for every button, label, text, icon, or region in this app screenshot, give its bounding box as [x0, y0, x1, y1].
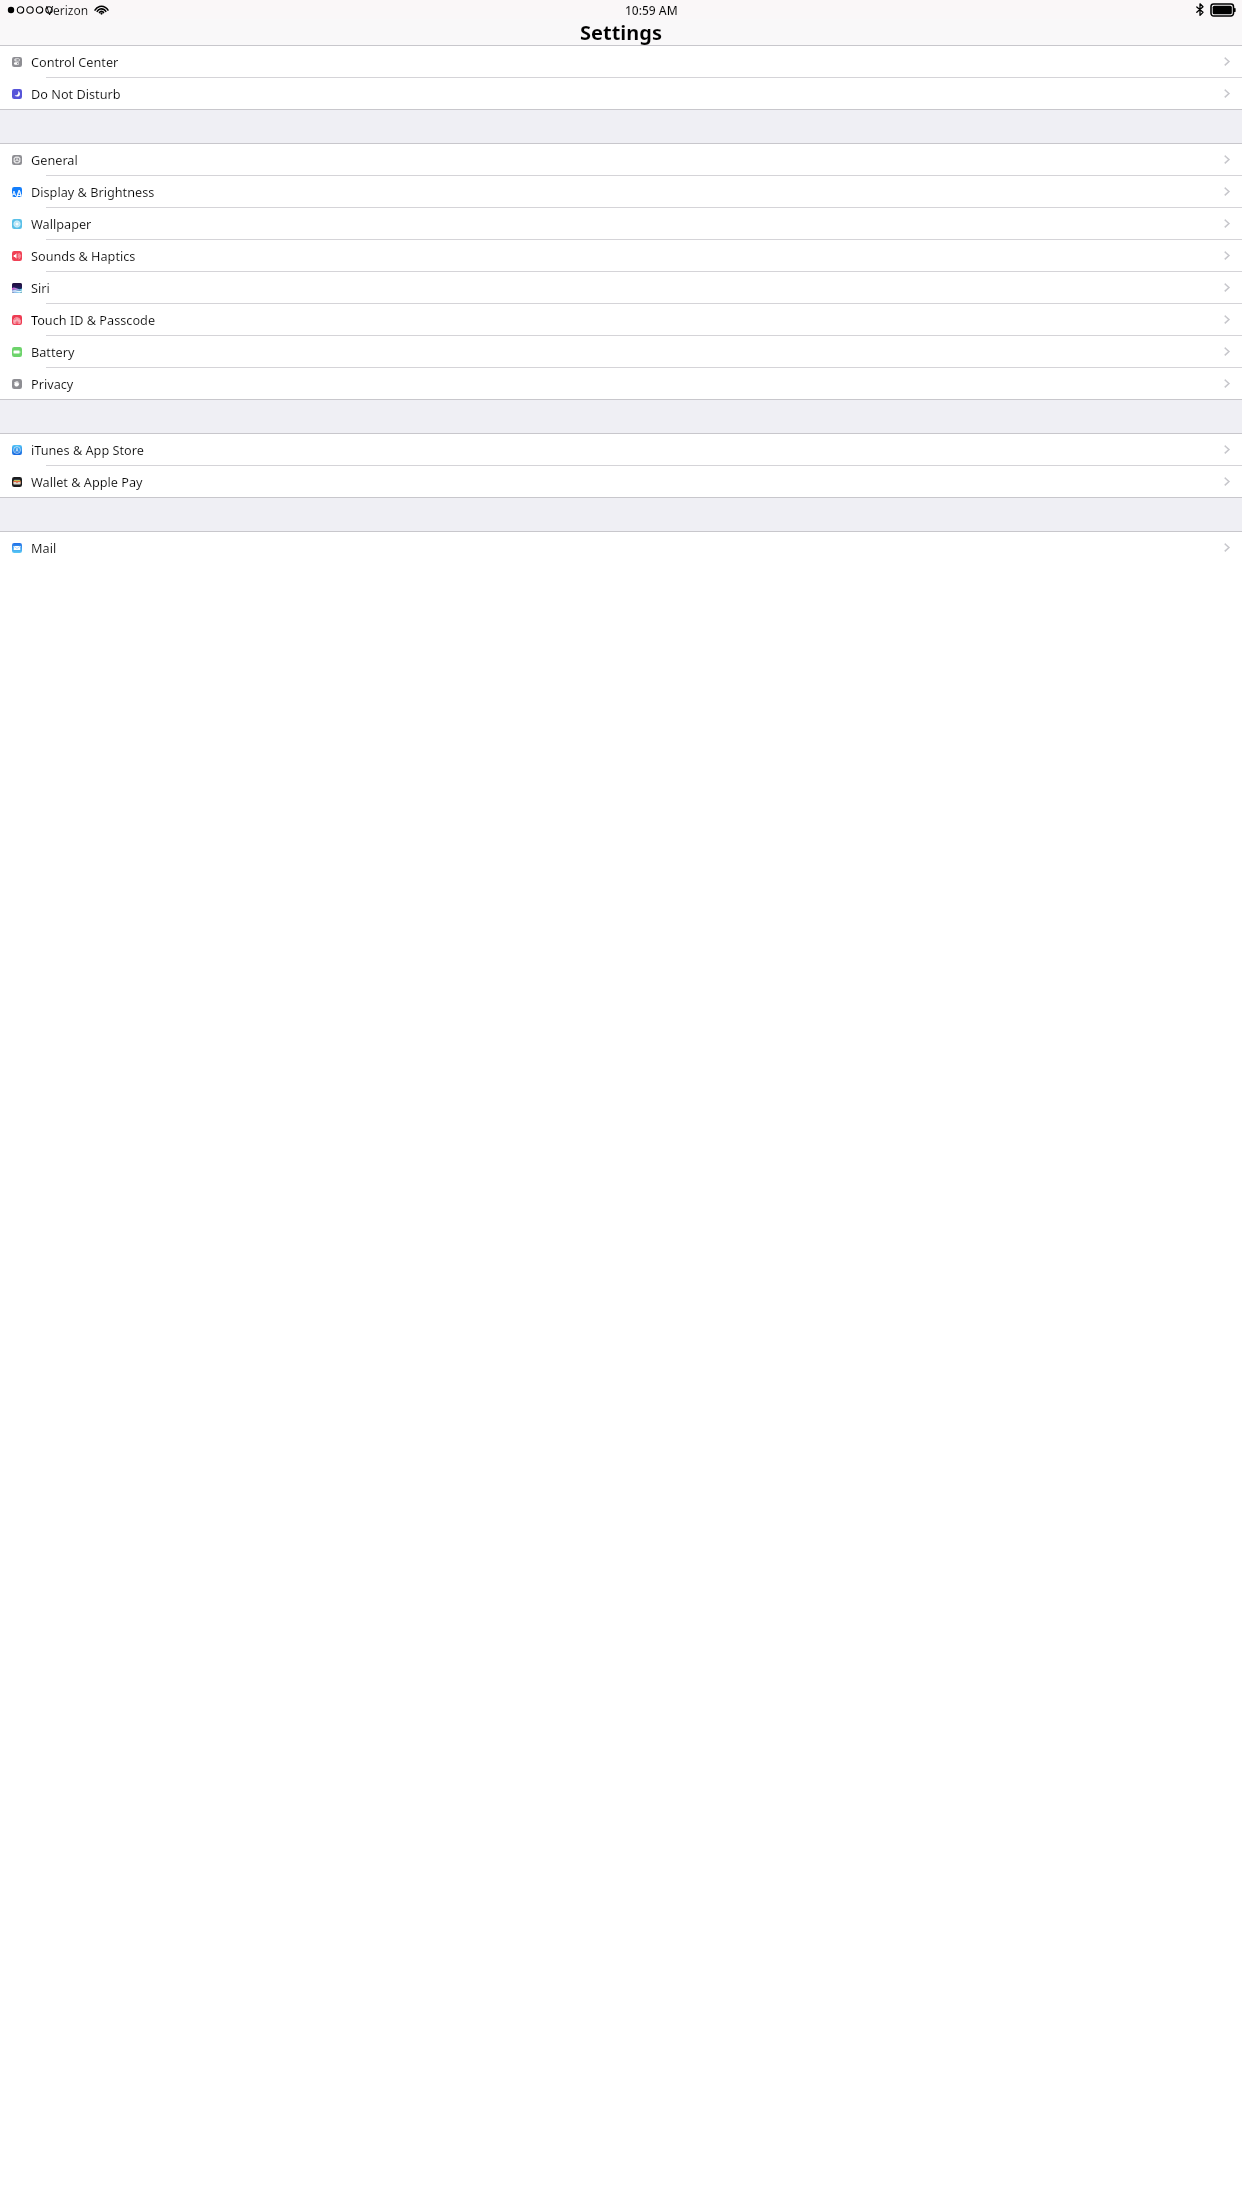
button[interactable]: A: [0, 176, 1242, 207]
staticText: Wallpaper: [31, 215, 92, 232]
staticText: Touch ID & Passcode: [31, 311, 156, 328]
button[interactable]: Do Not Disturb: [0, 78, 1242, 109]
button[interactable]: Battery: [0, 336, 1242, 367]
button[interactable]: General: [0, 144, 1242, 175]
staticText: iTunes & App Store: [31, 441, 144, 458]
staticText: 10:59 AM: [625, 2, 678, 18]
button[interactable]: Privacy: [0, 368, 1242, 399]
button[interactable]: Sounds & Haptics: [0, 240, 1242, 271]
staticText: Verizon: [46, 2, 89, 18]
staticText: Sounds & Haptics: [31, 247, 136, 264]
staticText: Wallet & Apple Pay: [31, 473, 143, 490]
staticText: Privacy: [31, 375, 74, 392]
button[interactable]: iTunes & App Store: [0, 434, 1242, 465]
staticText: Do Not Disturb: [31, 85, 121, 102]
staticText: Siri: [31, 279, 50, 296]
button[interactable]: Mail: [0, 532, 1242, 563]
button[interactable]: Wallpaper: [0, 208, 1242, 239]
staticText: General: [31, 151, 78, 168]
staticText: A: [12, 189, 16, 197]
staticText: A: [16, 187, 22, 197]
button[interactable]: Control Center: [0, 46, 1242, 77]
staticText: Settings: [580, 19, 662, 45]
button[interactable]: Wallet & Apple Pay: [0, 466, 1242, 497]
staticText: Mail: [31, 539, 57, 556]
button[interactable]: Touch ID & Passcode: [0, 304, 1242, 335]
staticText: Control Center: [31, 53, 119, 70]
button[interactable]: Siri: [0, 272, 1242, 303]
staticText: Display & Brightness: [31, 183, 155, 200]
staticText: Battery: [31, 343, 75, 360]
